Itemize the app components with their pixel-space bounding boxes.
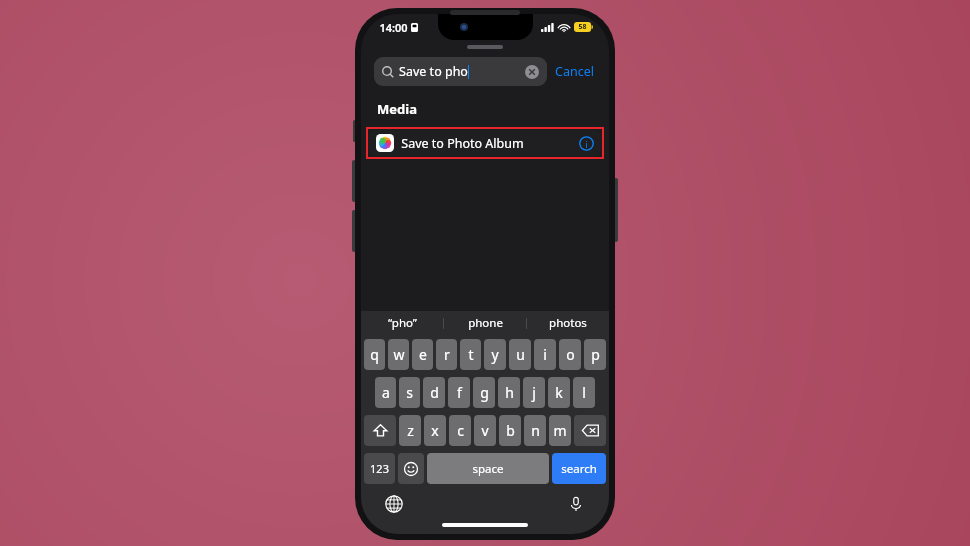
button[interactable]: space [427,453,549,484]
staticText: i [585,138,588,150]
staticText: Save to Photo Album [401,135,524,152]
staticText: 14:00 [379,20,408,35]
staticText: j [532,383,536,402]
button[interactable]: search [552,453,606,484]
button[interactable]: f [448,377,470,408]
button[interactable]: n [524,415,546,446]
button[interactable]: s [399,377,420,408]
button[interactable]: phone [444,315,526,331]
button[interactable]: Switch language [381,491,407,517]
button[interactable]: Backspace [574,415,606,446]
staticText: Cancel [555,63,594,80]
staticText: y [491,345,499,364]
staticText: g [480,383,489,402]
button[interactable]: w [388,339,409,370]
button[interactable]: Save to Photo Album [369,130,601,156]
button[interactable]: Shift [364,415,396,446]
staticText: p [591,345,600,364]
button[interactable]: u [509,339,531,370]
button[interactable]: a [375,377,396,408]
button[interactable]: Clear text [525,65,539,79]
button[interactable]: Cancel [547,59,596,84]
staticText: z [407,421,414,440]
button[interactable]: v [474,415,496,446]
staticText: i [543,345,547,364]
staticText: e [419,345,427,364]
staticText: space [472,461,504,477]
button[interactable]: p [584,339,606,370]
button[interactable]: Dictate [563,491,589,517]
button[interactable]: i [534,339,556,370]
button[interactable]: o [559,339,581,370]
button[interactable]: m [549,415,571,446]
staticText: s [406,383,413,402]
button[interactable]: y [484,339,506,370]
button[interactable]: g [473,377,495,408]
button[interactable]: “pho” [361,315,443,331]
staticText: t [468,345,474,364]
staticText: v [481,421,489,440]
staticText: w [393,345,405,364]
button[interactable]: t [460,339,481,370]
staticText: b [506,421,515,440]
staticText: l [582,383,586,402]
staticText: photos [549,315,587,331]
button[interactable]: e [412,339,433,370]
staticText: Media [377,100,417,118]
staticText: q [370,345,379,364]
button[interactable]: d [423,377,445,408]
staticText: 123 [370,461,389,476]
staticText: d [430,383,439,402]
staticText: r [444,345,450,364]
staticText: u [516,345,525,364]
button[interactable]: 123 [364,453,395,484]
button[interactable]: h [498,377,520,408]
staticText: n [531,421,540,440]
button[interactable]: Info [579,136,594,151]
staticText: 58 [578,22,587,32]
staticText: “pho” [388,315,417,331]
button[interactable]: q [364,339,385,370]
button[interactable]: r [436,339,457,370]
staticText: c [457,421,464,440]
button[interactable]: z [399,415,421,446]
staticText: m [553,421,567,440]
button[interactable]: k [548,377,570,408]
staticText: phone [468,315,503,331]
button[interactable]: j [523,377,545,408]
button[interactable]: c [449,415,471,446]
button[interactable]: b [499,415,521,446]
staticText: k [555,383,563,402]
button[interactable]: l [573,377,595,408]
staticText: x [431,421,439,440]
button[interactable]: Emoji [398,453,424,484]
staticText: a [382,383,390,402]
staticText: search [561,461,597,477]
button[interactable]: photos [527,315,609,331]
staticText: h [505,383,514,402]
staticText: o [566,345,575,364]
button[interactable]: Save to pho [374,57,547,86]
staticText: f [457,383,462,402]
staticText: Save to pho [399,63,468,80]
button[interactable]: x [424,415,446,446]
